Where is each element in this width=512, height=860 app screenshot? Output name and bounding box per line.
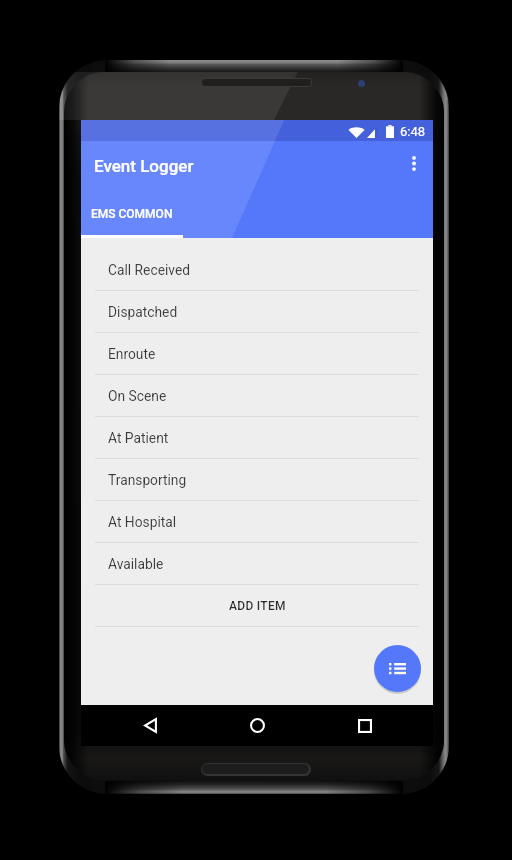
button[interactable]: On Scene bbox=[81, 375, 433, 417]
staticText: 6:48 bbox=[400, 124, 426, 139]
button[interactable]: Dispatched bbox=[81, 291, 433, 333]
button[interactable]: Show event list bbox=[374, 645, 421, 692]
staticText: Enroute bbox=[108, 346, 156, 362]
staticText: Event Logger bbox=[94, 156, 194, 176]
button[interactable]: Back bbox=[131, 705, 169, 746]
button[interactable]: At Hospital bbox=[81, 501, 433, 543]
button[interactable]: Available bbox=[81, 543, 433, 585]
button[interactable]: More options bbox=[394, 143, 434, 183]
button[interactable]: EMS COMMON bbox=[81, 191, 183, 238]
button[interactable]: ADD ITEM bbox=[81, 585, 433, 627]
button[interactable]: At Patient bbox=[81, 417, 433, 459]
staticText: At Hospital bbox=[108, 514, 177, 530]
staticText: Dispatched bbox=[108, 304, 178, 320]
staticText: EMS COMMON bbox=[91, 207, 173, 221]
button[interactable]: Transporting bbox=[81, 459, 433, 501]
staticText: Available bbox=[108, 556, 164, 572]
button[interactable]: Home bbox=[238, 705, 276, 746]
button[interactable]: Recent apps bbox=[346, 705, 384, 746]
button[interactable]: Enroute bbox=[81, 333, 433, 375]
staticText: At Patient bbox=[108, 430, 169, 446]
staticText: On Scene bbox=[108, 388, 167, 404]
staticText: ADD ITEM bbox=[229, 599, 286, 613]
staticText: Transporting bbox=[108, 472, 187, 488]
button[interactable]: Call Received bbox=[81, 249, 433, 291]
staticText: Call Received bbox=[108, 262, 191, 278]
